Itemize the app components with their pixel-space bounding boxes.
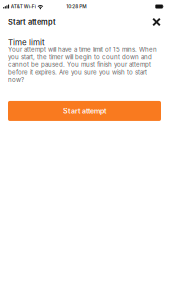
staticText: AT&T Wi-Fi (11, 4, 36, 9)
staticText: Start attempt (63, 107, 106, 115)
staticText: 10:28 PM (66, 4, 86, 9)
staticText: Time limit (8, 38, 45, 47)
staticText: Start attempt (8, 17, 56, 26)
staticText: Your attempt will have a time limit of 1… (8, 46, 157, 83)
button[interactable]: Start attempt (8, 101, 161, 121)
button[interactable]: Close (148, 14, 164, 30)
